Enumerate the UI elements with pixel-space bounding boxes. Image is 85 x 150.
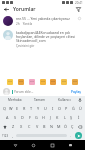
staticText: Q bbox=[3, 106, 6, 111]
staticText: Yorumlar bbox=[13, 6, 36, 13]
staticText: A bbox=[6, 115, 9, 120]
button[interactable]: Voice input bbox=[77, 96, 83, 104]
button[interactable]: Emoji bbox=[29, 79, 35, 85]
button[interactable]: İ bbox=[75, 113, 82, 122]
staticText: 2h Yanıtla bbox=[16, 22, 33, 26]
button[interactable]: W bbox=[7, 104, 14, 113]
button[interactable]: I bbox=[49, 104, 56, 113]
button[interactable]: Back bbox=[3, 6, 10, 13]
button[interactable]: A bbox=[3, 113, 11, 122]
button[interactable]: Emoji bbox=[61, 79, 67, 85]
button[interactable]: Ü bbox=[77, 104, 84, 113]
staticText: T bbox=[30, 106, 33, 111]
staticText: Ş bbox=[70, 115, 73, 120]
button[interactable]: Back bbox=[11, 141, 19, 149]
button[interactable]: U bbox=[42, 104, 49, 113]
button[interactable]: Tamam bbox=[27, 96, 52, 104]
staticText: kadadjapan444Konudaand en çok hoşlanılan… bbox=[16, 30, 82, 43]
button[interactable]: Emoji bbox=[18, 79, 24, 85]
button[interactable]: B bbox=[41, 122, 48, 131]
button[interactable]: D bbox=[19, 113, 26, 122]
button[interactable]: . bbox=[68, 132, 73, 139]
button[interactable]: Q bbox=[1, 104, 7, 113]
button[interactable]: Hide keyboard bbox=[66, 141, 74, 149]
button[interactable]: Emoji bbox=[50, 79, 56, 85]
staticText: K bbox=[56, 115, 59, 120]
button[interactable]: Y bbox=[35, 104, 42, 113]
button[interactable]: J bbox=[47, 113, 54, 122]
staticText: ree.55 ... Yeni yakında çıkartıyoruz bbox=[16, 16, 70, 21]
staticText: P bbox=[65, 106, 68, 111]
button[interactable]: E bbox=[14, 104, 21, 113]
button[interactable]: Ç bbox=[69, 122, 76, 131]
staticText: Y bbox=[37, 106, 40, 111]
button[interactable]: T bbox=[28, 104, 35, 113]
staticText: Kullanıcı bbox=[58, 98, 71, 102]
button[interactable]: P bbox=[63, 104, 70, 113]
button[interactable]: Backspace bbox=[76, 122, 84, 131]
staticText: C bbox=[28, 124, 31, 129]
button[interactable]: Ş bbox=[68, 113, 75, 122]
button[interactable]: Shift bbox=[1, 122, 9, 131]
button[interactable]: Merhaba bbox=[2, 96, 27, 104]
staticText: ?123 bbox=[2, 134, 9, 138]
button[interactable]: S bbox=[11, 113, 19, 122]
staticText: R bbox=[23, 106, 26, 111]
button[interactable]: H bbox=[40, 113, 47, 122]
button[interactable]: N bbox=[48, 122, 55, 131]
staticText: V bbox=[36, 124, 39, 129]
button[interactable]: ree.55 ... Yeni yakında çıkartıyoruz bbox=[0, 14, 85, 28]
staticText: J bbox=[50, 115, 52, 120]
staticText: G bbox=[35, 115, 38, 120]
staticText: Z bbox=[12, 124, 15, 129]
staticText: O bbox=[58, 106, 61, 111]
button[interactable]: Yorum ekle... bbox=[12, 90, 70, 94]
button[interactable]: G bbox=[33, 113, 40, 122]
button[interactable]: L bbox=[61, 113, 68, 122]
button[interactable]: Paylaş bbox=[70, 90, 82, 94]
button[interactable]: Kullanıcı bbox=[52, 96, 77, 104]
staticText: B bbox=[43, 124, 46, 129]
button[interactable]: F bbox=[26, 113, 33, 122]
staticText: Tamam bbox=[34, 98, 46, 102]
button[interactable]: O bbox=[56, 104, 63, 113]
button[interactable]: ?123 bbox=[1, 132, 10, 139]
button[interactable]: Z bbox=[9, 122, 17, 131]
button[interactable]: Ğ bbox=[70, 104, 77, 113]
button[interactable]: X bbox=[17, 122, 25, 131]
staticText: Paylaş bbox=[71, 90, 81, 94]
button[interactable]: R bbox=[21, 104, 28, 113]
staticText: L bbox=[64, 115, 66, 120]
button[interactable]: kadadjapan444Konudaand en çok hoşlanılan… bbox=[0, 28, 85, 50]
staticText: F bbox=[29, 115, 31, 120]
button[interactable]: K bbox=[54, 113, 61, 122]
button[interactable]: Send bbox=[75, 132, 82, 139]
staticText: I bbox=[52, 106, 54, 111]
button[interactable]: Recents bbox=[48, 141, 56, 149]
button[interactable]: Emoji bbox=[40, 79, 46, 85]
button[interactable]: V bbox=[33, 122, 41, 131]
staticText: S bbox=[14, 115, 17, 120]
staticText: Merhaba bbox=[8, 98, 22, 102]
button[interactable]: C bbox=[25, 122, 33, 131]
button[interactable]: Ö bbox=[62, 122, 69, 131]
staticText: . bbox=[70, 133, 71, 138]
staticText: E bbox=[16, 106, 19, 111]
staticText: Ğ bbox=[72, 106, 75, 111]
button[interactable]: , bbox=[10, 132, 15, 139]
button[interactable]: Home bbox=[29, 141, 37, 149]
button[interactable]: Like bbox=[77, 16, 82, 21]
button[interactable]: Emoji bbox=[7, 79, 13, 85]
staticText: N bbox=[50, 124, 53, 129]
button[interactable]: M bbox=[55, 122, 62, 131]
staticText: U bbox=[44, 106, 47, 111]
staticText: Ü bbox=[79, 106, 82, 111]
staticText: Ç bbox=[71, 124, 74, 129]
staticText: H bbox=[42, 115, 45, 120]
staticText: , bbox=[12, 133, 13, 138]
button[interactable]: Emoji bbox=[72, 79, 78, 85]
button[interactable]: Filter bbox=[75, 6, 82, 13]
staticText: 20:41 bbox=[75, 1, 83, 5]
staticText: Yorum ekle... bbox=[14, 90, 34, 94]
